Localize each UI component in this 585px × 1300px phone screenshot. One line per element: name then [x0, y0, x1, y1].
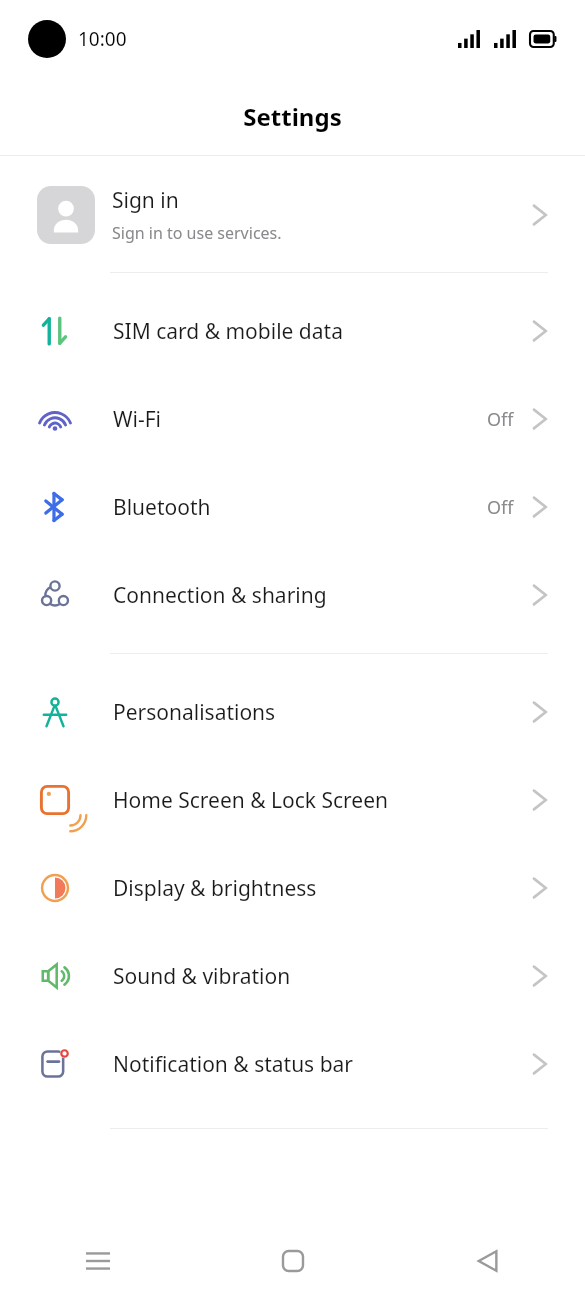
- button[interactable]: Home Screen & Lock Screen: [0, 756, 585, 844]
- staticText: Bluetooth: [113, 493, 487, 522]
- button[interactable]: Display & brightness: [0, 844, 585, 932]
- other: Open: [532, 582, 548, 608]
- other: Open: [532, 406, 548, 432]
- button[interactable]: Sign in: [0, 180, 585, 250]
- staticText: Settings: [243, 100, 342, 133]
- button[interactable]: Recent apps: [0, 1222, 195, 1300]
- button[interactable]: Home: [195, 1222, 390, 1300]
- button[interactable]: Wi-Fi: [0, 375, 585, 463]
- staticText: Off: [487, 495, 514, 520]
- staticText: Personalisations: [113, 698, 532, 727]
- button[interactable]: SIM card & mobile data: [0, 287, 585, 375]
- staticText: Connection & sharing: [113, 581, 532, 610]
- other: Open: [532, 494, 548, 520]
- staticText: 10:00: [78, 26, 127, 52]
- button[interactable]: Connection & sharing: [0, 551, 585, 639]
- other: Open: [532, 875, 548, 901]
- other: Open: [532, 963, 548, 989]
- button[interactable]: Sound & vibration: [0, 932, 585, 1020]
- button[interactable]: Back: [390, 1222, 585, 1300]
- staticText: Off: [487, 407, 514, 432]
- other: Open: [532, 699, 548, 725]
- button[interactable]: Notification & status bar: [0, 1020, 585, 1108]
- other: Open: [532, 787, 548, 813]
- other: Open: [532, 202, 548, 228]
- staticText: Display & brightness: [113, 874, 532, 903]
- staticText: Notification & status bar: [113, 1050, 532, 1079]
- other: Open: [532, 1051, 548, 1077]
- other: Open: [532, 318, 548, 344]
- staticText: Wi-Fi: [113, 405, 487, 434]
- staticText: Home Screen & Lock Screen: [113, 786, 532, 815]
- button[interactable]: Personalisations: [0, 668, 585, 756]
- staticText: Sound & vibration: [113, 962, 532, 991]
- button[interactable]: Bluetooth: [0, 463, 585, 551]
- staticText: Sign in: [112, 186, 179, 215]
- staticText: Sign in to use services.: [112, 222, 282, 244]
- staticText: SIM card & mobile data: [113, 317, 532, 346]
